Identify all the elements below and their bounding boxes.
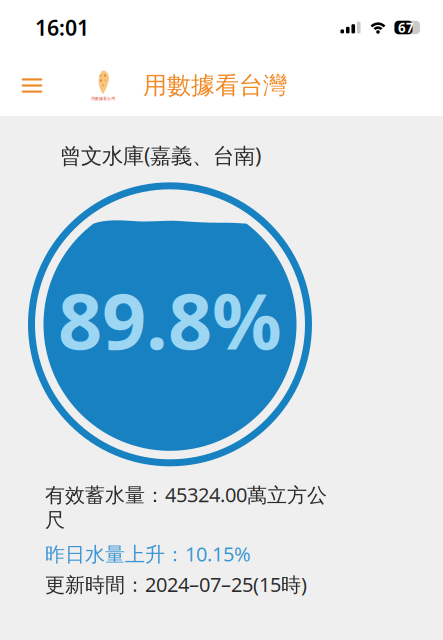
staticText: 昨日水量上升：10.15% xyxy=(45,540,251,567)
button[interactable]: Menu xyxy=(10,63,54,107)
staticText: 曾文水庫(嘉義、台南) xyxy=(60,141,261,169)
staticText: 更新時間：2024–07–25(15時) xyxy=(45,571,307,598)
staticText: 用數據看台灣 xyxy=(143,71,287,100)
button[interactable]: Home xyxy=(89,68,117,102)
staticText: 有效蓄水量：45324.00萬立方公尺 xyxy=(45,481,327,532)
staticText: 67 xyxy=(398,19,414,36)
staticText: 用數據看台灣 xyxy=(91,96,115,101)
staticText: 89.8% xyxy=(58,268,282,371)
staticText: 16:01 xyxy=(35,13,89,42)
